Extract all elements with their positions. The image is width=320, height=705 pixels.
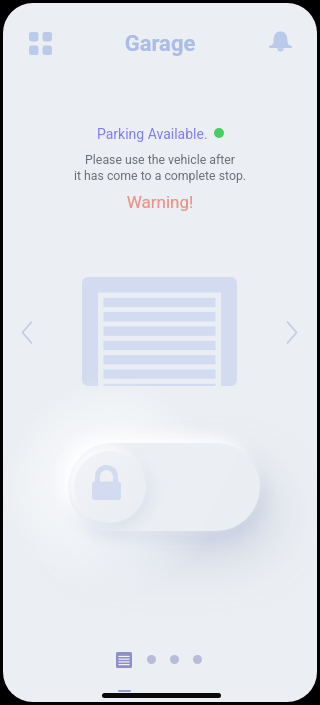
button[interactable]: Page 2 [147, 655, 156, 664]
button[interactable]: Notifications [265, 27, 295, 57]
staticText: Garage [3, 31, 317, 57]
button[interactable]: Menu [25, 28, 55, 58]
button[interactable]: Page 4 [193, 655, 202, 664]
button[interactable]: Garage [112, 648, 136, 672]
staticText: Please use the vehicle after it has come… [3, 153, 317, 183]
button[interactable]: Unlock garage [68, 443, 260, 531]
button[interactable]: Next [276, 316, 308, 348]
staticText: Warning! [3, 192, 317, 212]
button[interactable]: Previous [11, 316, 43, 348]
button[interactable]: Page 3 [170, 655, 179, 664]
staticText: Parking Available. [97, 126, 208, 142]
